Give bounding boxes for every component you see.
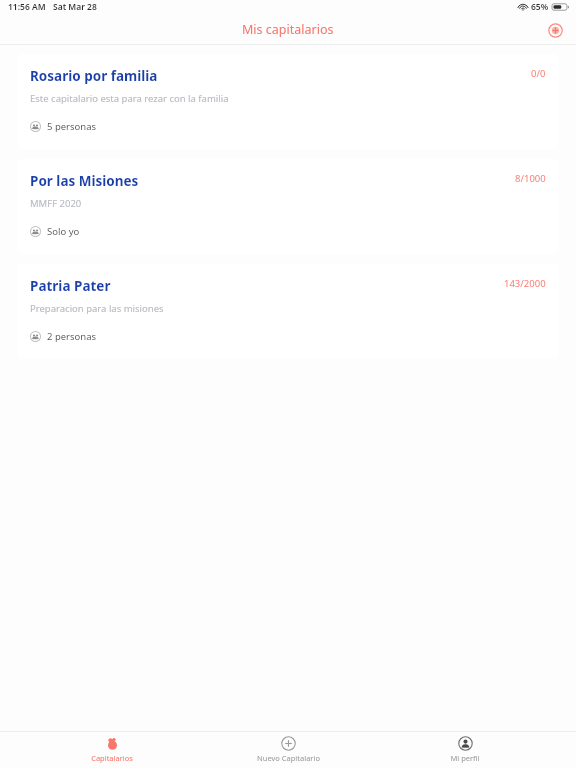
staticText: Rosario por familia xyxy=(30,67,158,85)
staticText: 8/1000 xyxy=(515,172,546,185)
staticText: 5 personas xyxy=(47,120,97,133)
staticText: MMFF 2020 xyxy=(30,197,82,210)
staticText: 65% xyxy=(531,1,549,13)
staticText: Este capitalario esta para rezar con la … xyxy=(30,92,229,105)
staticText: Capitalarios xyxy=(91,753,133,763)
staticText: Mi perfil xyxy=(450,753,480,763)
button[interactable]: Capitalarios xyxy=(47,734,177,768)
staticText: Patria Pater xyxy=(30,277,111,295)
staticText: 143/2000 xyxy=(504,277,546,290)
staticText: Por las Misiones xyxy=(30,172,139,190)
button[interactable]: Nuevo Capitalario xyxy=(223,734,353,768)
staticText: 2 personas xyxy=(47,330,97,343)
button[interactable]: Nuevo capitalario xyxy=(542,17,568,43)
button[interactable]: Por las Misiones xyxy=(18,159,558,254)
staticText: 11:56 AM xyxy=(8,1,46,13)
staticText: Preparacion para las misiones xyxy=(30,302,164,315)
button[interactable]: Rosario por familia xyxy=(18,54,558,149)
staticText: Nuevo Capitalario xyxy=(257,753,320,763)
staticText: 0/0 xyxy=(531,67,546,80)
button[interactable]: Mi perfil xyxy=(400,734,530,768)
staticText: Solo yo xyxy=(47,225,80,238)
staticText: Mis capitalarios xyxy=(242,21,334,38)
button[interactable]: Patria Pater xyxy=(18,264,558,359)
staticText: Sat Mar 28 xyxy=(53,1,97,13)
